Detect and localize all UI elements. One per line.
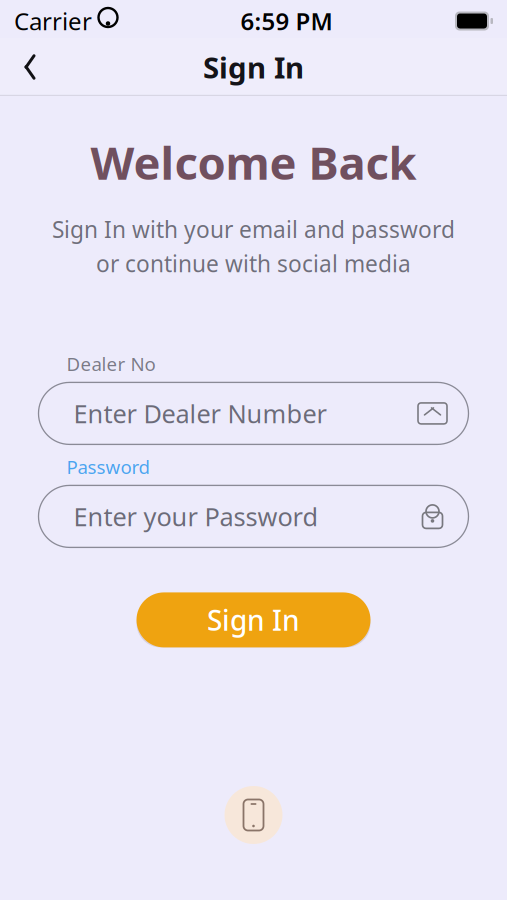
button[interactable]: Sign In	[136, 592, 370, 647]
staticText: Sign In	[203, 47, 304, 86]
staticText: Dealer No	[66, 351, 155, 376]
staticText: Enter Dealer Number	[73, 397, 326, 430]
staticText: Carrier	[14, 5, 92, 37]
button[interactable]: Show password	[414, 498, 450, 534]
staticText: Enter your Password	[73, 500, 318, 533]
button[interactable]: Continue with mobile device	[224, 786, 282, 844]
staticText: 6:59 PM	[240, 5, 332, 37]
staticText: Sign In	[207, 601, 300, 638]
button[interactable]: Back	[8, 45, 52, 89]
button[interactable]: Dealer number	[414, 395, 450, 431]
staticText: Welcome Back	[90, 132, 416, 192]
staticText: or continue with social media	[96, 248, 411, 278]
staticText: Password	[66, 454, 149, 479]
staticText: Sign In with your email and password	[52, 214, 455, 244]
